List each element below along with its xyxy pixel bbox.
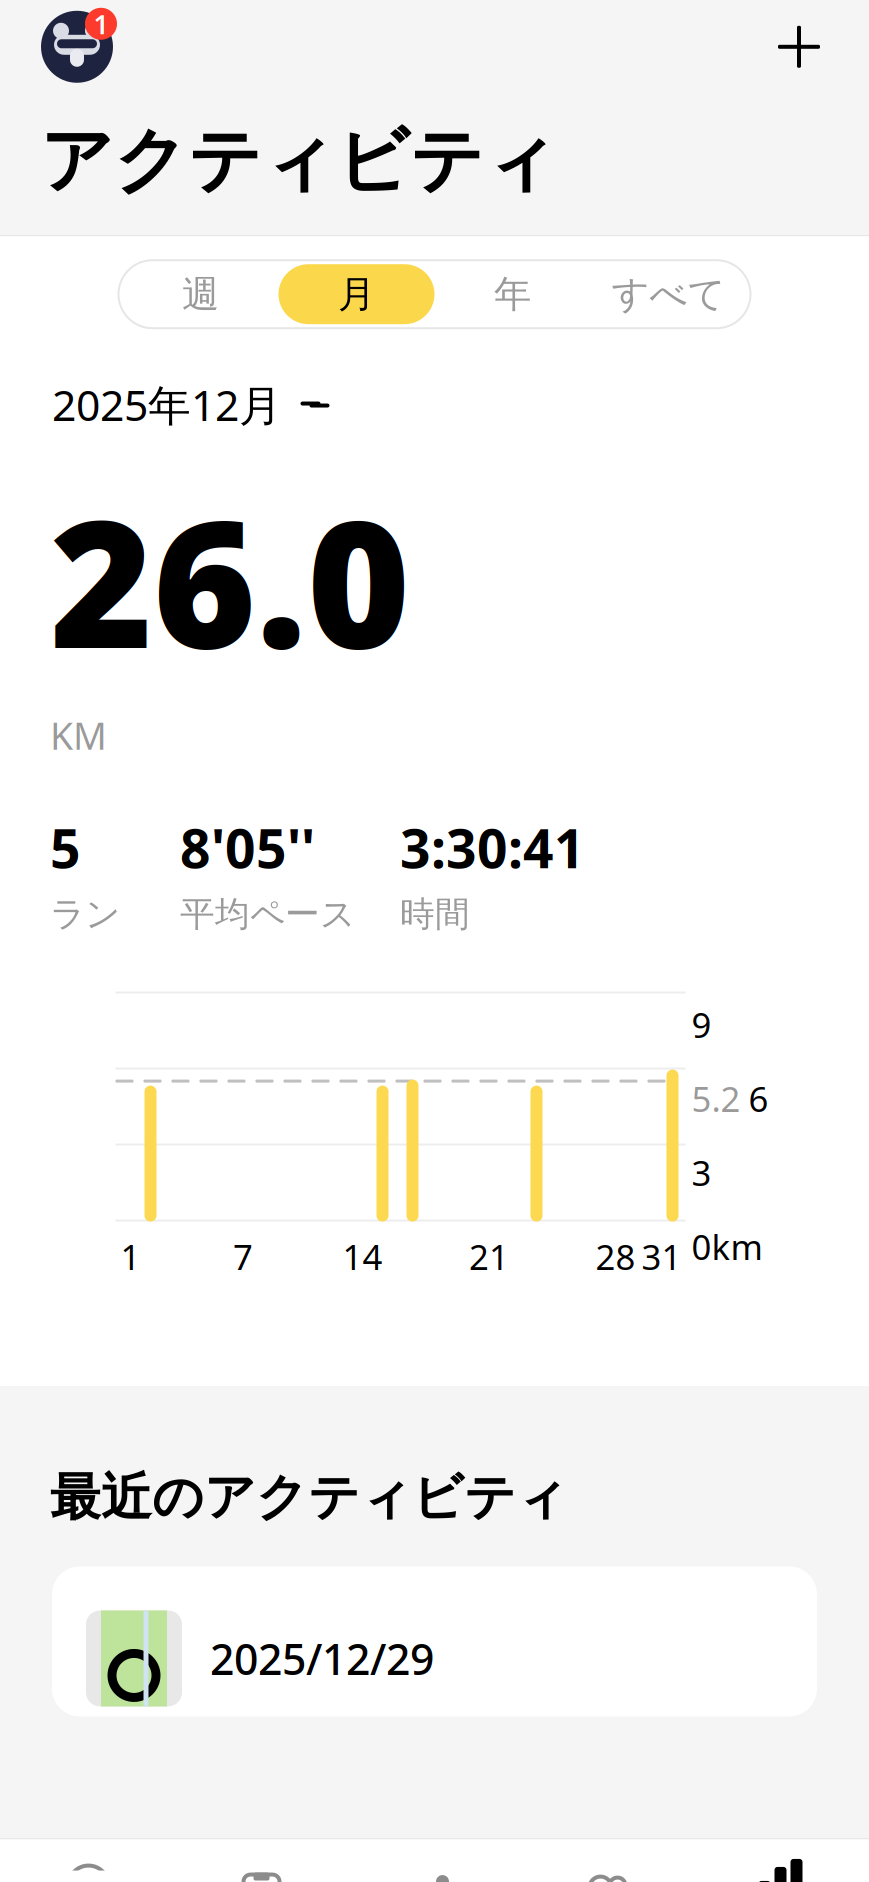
button[interactable]: ホーム xyxy=(2,1858,175,1882)
staticText: 3:30:41 xyxy=(400,812,585,883)
staticText: 1 xyxy=(93,6,108,41)
staticText: すべて xyxy=(611,271,725,317)
staticText: KM xyxy=(50,711,107,760)
staticText: 28 xyxy=(595,1234,635,1280)
staticText: 1 xyxy=(120,1234,140,1280)
staticText: 3 xyxy=(691,1150,711,1196)
staticText: 0km xyxy=(691,1224,762,1270)
staticText: ラン xyxy=(50,893,120,936)
button[interactable]: 2025/12/29 xyxy=(52,1566,817,1716)
staticText: 21 xyxy=(469,1234,509,1280)
button[interactable]: 2025年12月 xyxy=(52,376,332,433)
button[interactable]: クラブ xyxy=(521,1858,694,1882)
staticText: 最近のアクティビティ xyxy=(50,1466,568,1528)
staticText: 14 xyxy=(342,1234,382,1280)
staticText: 週 xyxy=(182,271,219,317)
button[interactable]: Profile xyxy=(34,4,120,90)
staticText: 7 xyxy=(233,1234,253,1280)
staticText: アクティビティ xyxy=(40,117,558,205)
staticText: 2025年12月 xyxy=(52,376,282,433)
staticText: 5 xyxy=(50,812,81,883)
staticText: 31 xyxy=(641,1234,681,1280)
staticText: 時間 xyxy=(400,893,470,936)
button[interactable]: 月 xyxy=(278,264,434,324)
button[interactable]: Add xyxy=(761,9,837,85)
staticText: 月 xyxy=(338,271,375,317)
staticText: 2025/12/29 xyxy=(210,1630,434,1687)
button[interactable]: アクティビティ xyxy=(694,1858,867,1882)
staticText: 9 xyxy=(691,1002,711,1048)
staticText: 26.0 xyxy=(50,463,410,697)
button[interactable]: ラン xyxy=(348,1858,521,1882)
button[interactable]: プラン xyxy=(175,1858,348,1882)
button[interactable]: 年 xyxy=(434,264,590,324)
staticText: 5.2 xyxy=(691,1076,740,1122)
staticText: 年 xyxy=(494,271,531,317)
staticText: 6 xyxy=(748,1076,768,1122)
staticText: 平均ペース xyxy=(180,893,355,936)
button[interactable]: 週 xyxy=(122,264,278,324)
staticText: 8'05'' xyxy=(180,812,315,883)
button[interactable]: すべて xyxy=(590,264,746,324)
